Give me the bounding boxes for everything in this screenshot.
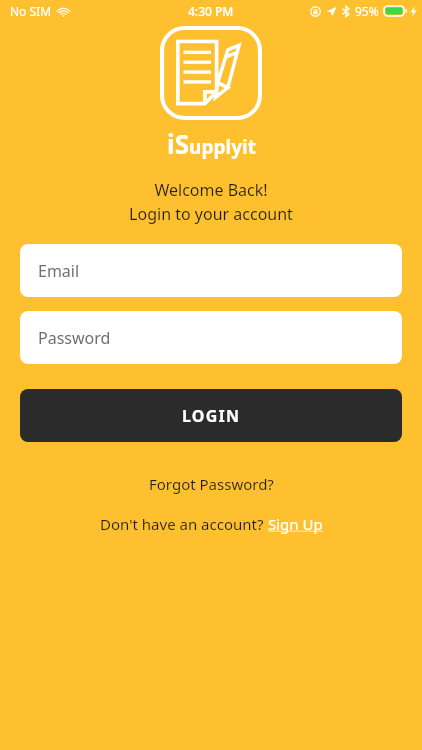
staticText: Sign Up bbox=[268, 514, 323, 534]
staticText: iSupplyit bbox=[167, 126, 256, 161]
staticText: No SIM bbox=[10, 3, 52, 19]
button[interactable]: LOGIN bbox=[20, 389, 402, 442]
staticText: Email bbox=[38, 260, 80, 282]
staticText: Welcome Back! bbox=[0, 179, 422, 201]
button[interactable]: Forgot Password? bbox=[139, 470, 284, 498]
staticText: Forgot Password? bbox=[149, 474, 274, 494]
other: iSupplyit logo bbox=[160, 26, 262, 120]
button[interactable]: Password bbox=[20, 311, 402, 364]
button[interactable]: Sign Up bbox=[268, 514, 323, 534]
staticText: 4:30 PM bbox=[188, 3, 234, 19]
staticText: Password bbox=[38, 327, 111, 349]
staticText: Don't have an account? bbox=[100, 514, 268, 534]
staticText: LOGIN bbox=[182, 405, 241, 427]
button[interactable]: Email bbox=[20, 244, 402, 297]
staticText: Login to your account bbox=[0, 203, 422, 225]
staticText: 95% bbox=[355, 3, 379, 19]
